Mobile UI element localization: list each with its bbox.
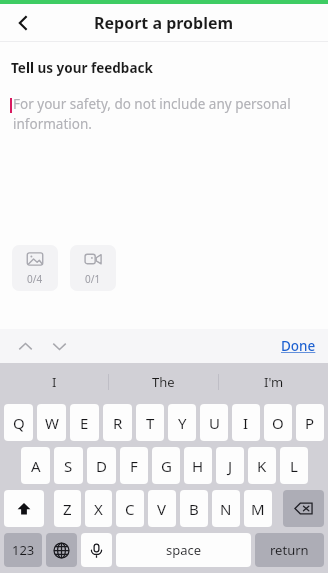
staticText: Z	[63, 499, 72, 519]
staticText: Q	[13, 413, 25, 433]
button[interactable]: O	[264, 404, 292, 441]
staticText: F	[130, 456, 138, 476]
button[interactable]: V	[148, 490, 176, 527]
button[interactable]: Previous field	[12, 333, 38, 359]
button[interactable]: H	[184, 447, 212, 484]
button[interactable]: Q	[4, 404, 33, 441]
staticText: V	[157, 499, 167, 519]
button[interactable]: I	[0, 363, 108, 401]
button[interactable]: R	[103, 404, 132, 441]
button[interactable]: Done	[277, 333, 320, 359]
staticText: For your safety, do not include any pers…	[13, 95, 314, 133]
staticText: P	[305, 413, 315, 433]
button[interactable]: Backspace	[283, 490, 324, 527]
button[interactable]: Next field	[46, 333, 72, 359]
button[interactable]: G	[152, 447, 180, 484]
button[interactable]: F	[120, 447, 148, 484]
button[interactable]: N	[212, 490, 240, 527]
staticText: C	[125, 499, 135, 519]
button[interactable]: E	[70, 404, 99, 441]
button[interactable]: A	[21, 447, 50, 484]
staticText: I	[52, 373, 57, 391]
staticText: X	[94, 499, 103, 519]
staticText: space	[166, 541, 202, 559]
button[interactable]: J	[216, 447, 244, 484]
button[interactable]: Add video	[70, 245, 116, 291]
staticText: E	[80, 413, 89, 433]
button[interactable]: Z	[54, 490, 81, 527]
staticText: Y	[178, 413, 187, 433]
staticText: R	[113, 413, 123, 433]
button[interactable]: P	[296, 404, 324, 441]
staticText: J	[228, 456, 233, 476]
staticText: B	[189, 499, 199, 519]
button[interactable]: return	[255, 533, 324, 567]
staticText: O	[272, 413, 284, 433]
button[interactable]: Voice input	[81, 533, 112, 567]
staticText: L	[290, 456, 298, 476]
staticText: Report a problem	[94, 12, 234, 34]
button[interactable]: D	[87, 447, 116, 484]
staticText: U	[209, 413, 220, 433]
staticText: I'm	[264, 373, 284, 391]
button[interactable]: U	[200, 404, 228, 441]
button[interactable]: S	[54, 447, 83, 484]
button[interactable]: Back	[4, 4, 42, 41]
button[interactable]: Shift	[4, 490, 44, 527]
button[interactable]: I'm	[219, 363, 328, 401]
staticText: S	[64, 456, 73, 476]
staticText: The	[152, 373, 175, 391]
button[interactable]: B	[180, 490, 208, 527]
button[interactable]: T	[136, 404, 164, 441]
button[interactable]: C	[116, 490, 144, 527]
staticText: I	[243, 413, 249, 433]
staticText: 123	[12, 541, 35, 559]
staticText: K	[257, 456, 267, 476]
button[interactable]: 123	[4, 533, 42, 567]
button[interactable]: L	[280, 447, 308, 484]
staticText: return	[270, 541, 309, 559]
button[interactable]: M	[244, 490, 272, 527]
staticText: D	[96, 456, 107, 476]
staticText: G	[161, 456, 172, 476]
staticText: N	[220, 499, 232, 519]
button[interactable]: Add photo	[12, 245, 58, 291]
button[interactable]: X	[85, 490, 112, 527]
button[interactable]: K	[248, 447, 276, 484]
staticText: A	[31, 456, 41, 476]
staticText: Tell us your feedback	[11, 59, 153, 77]
button[interactable]: The	[109, 363, 218, 401]
button[interactable]: W	[37, 404, 66, 441]
button[interactable]: I	[232, 404, 260, 441]
button[interactable]: Y	[168, 404, 196, 441]
staticText: 0/4	[27, 272, 43, 286]
staticText: 0/1	[85, 272, 101, 286]
staticText: M	[251, 499, 265, 519]
staticText: W	[45, 413, 59, 433]
button[interactable]: Switch keyboard	[46, 533, 77, 567]
staticText: H	[192, 456, 204, 476]
staticText: Done	[281, 337, 316, 355]
staticText: T	[146, 413, 155, 433]
button[interactable]: space	[116, 533, 251, 567]
